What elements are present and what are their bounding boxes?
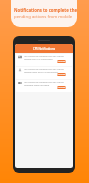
- button[interactable]: Complete: [57, 73, 66, 76]
- staticText: Notifications to complete the: [14, 7, 77, 13]
- button[interactable]: You should be complete your Bill. Please: [16, 80, 72, 92]
- staticText: You should be complete your Bill. Please: [24, 68, 64, 71]
- button[interactable]: CPS Notifications: [15, 44, 73, 53]
- button[interactable]: You should be complete your Bill. Please: [16, 54, 72, 66]
- button[interactable]: Complete: [57, 86, 66, 89]
- button[interactable]: You should be complete your Bill. Please: [16, 67, 72, 79]
- staticText: Complete: [57, 60, 66, 63]
- staticText: update Photo and KYC Documents.: [24, 71, 59, 74]
- staticText: Complete: [57, 73, 66, 76]
- staticText: CPS Notifications: [33, 47, 55, 51]
- staticText: You should be complete your Bill. Please: [24, 55, 64, 58]
- staticText: Complete: [57, 86, 66, 89]
- staticText: update your KYC information.: [24, 58, 54, 61]
- staticText: You should be complete your Bill. Please: [24, 81, 64, 84]
- staticText: complete video recording.: [24, 84, 50, 87]
- staticText: pending actions from mobile: [14, 13, 73, 19]
- button[interactable]: Complete: [57, 60, 66, 63]
